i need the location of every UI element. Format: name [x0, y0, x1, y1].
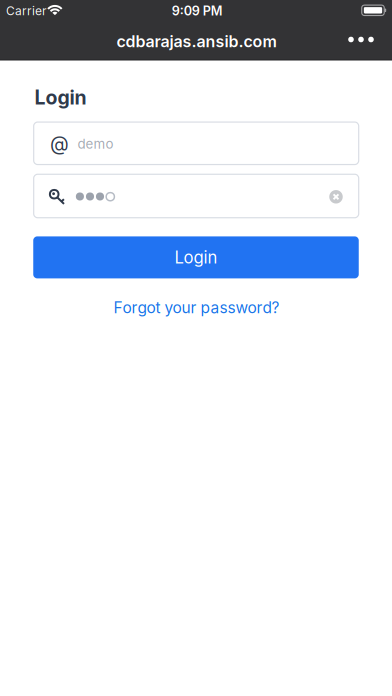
- staticText: Carrier: [6, 3, 47, 18]
- staticText: demo: [77, 136, 113, 152]
- button[interactable]: [34, 174, 359, 218]
- button[interactable]: [339, 21, 383, 57]
- button[interactable]: Forgot your password?: [113, 298, 279, 317]
- staticText: 9:09 PM: [172, 3, 223, 19]
- button[interactable]: [329, 190, 343, 204]
- staticText: cdbarajas.ansib.com: [116, 32, 276, 51]
- staticText: @: [50, 132, 69, 155]
- button[interactable]: Login: [33, 236, 359, 278]
- staticText: Login: [34, 85, 86, 109]
- staticText: Login: [174, 247, 217, 267]
- button[interactable]: [34, 122, 359, 165]
- staticText: Forgot your password?: [113, 298, 279, 317]
